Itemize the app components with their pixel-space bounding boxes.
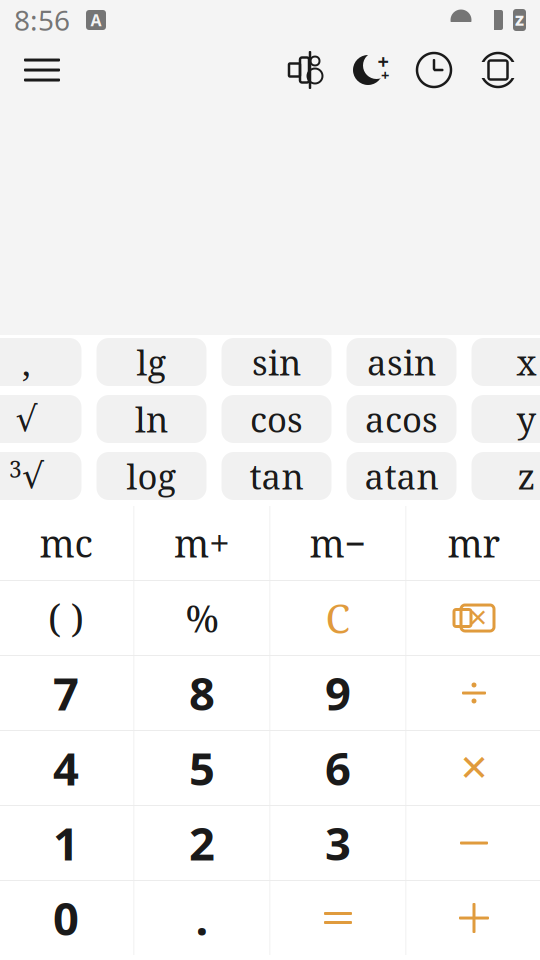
staticText: √ bbox=[15, 399, 37, 439]
staticText: C bbox=[325, 591, 350, 645]
staticText: 5 bbox=[189, 738, 215, 798]
staticText: Z bbox=[515, 10, 524, 30]
button[interactable]: m+ bbox=[134, 506, 269, 580]
staticText: ✕ bbox=[459, 748, 489, 788]
button[interactable]: 3 bbox=[270, 806, 405, 880]
staticText: acos bbox=[365, 395, 438, 443]
staticText: cos bbox=[250, 395, 303, 443]
staticText: 0 bbox=[53, 888, 79, 948]
staticText: 8 bbox=[189, 663, 215, 723]
button[interactable]: C bbox=[270, 581, 405, 655]
button[interactable]: ✕ bbox=[406, 731, 540, 805]
button[interactable]: cos bbox=[221, 395, 331, 443]
staticText: . bbox=[195, 888, 208, 948]
button[interactable]: 1 bbox=[0, 806, 133, 880]
button[interactable]: 6 bbox=[270, 731, 405, 805]
staticText: mc bbox=[39, 518, 92, 568]
button[interactable] bbox=[270, 881, 405, 955]
staticText: m− bbox=[309, 518, 366, 568]
button[interactable]: z bbox=[471, 452, 540, 500]
staticText: + bbox=[377, 48, 388, 74]
staticText: 8:56 bbox=[14, 1, 70, 39]
button[interactable]: 9 bbox=[270, 656, 405, 730]
button[interactable]: Rotate bbox=[470, 42, 526, 98]
staticText: z bbox=[517, 452, 535, 500]
button[interactable]: y bbox=[471, 395, 540, 443]
staticText: , bbox=[22, 338, 31, 386]
button[interactable]: , bbox=[0, 338, 81, 386]
button[interactable] bbox=[406, 806, 540, 880]
staticText: 9 bbox=[325, 663, 351, 723]
button[interactable]: √ bbox=[0, 395, 81, 443]
staticText: 6 bbox=[325, 738, 351, 798]
button[interactable]: Menu bbox=[14, 42, 70, 98]
staticText: log bbox=[126, 452, 176, 500]
button[interactable]: x bbox=[471, 338, 540, 386]
staticText: √ bbox=[22, 456, 44, 496]
staticText: 2 bbox=[189, 813, 215, 873]
button[interactable]: acos bbox=[346, 395, 456, 443]
button[interactable]: 5 bbox=[134, 731, 269, 805]
button[interactable]: % bbox=[134, 581, 269, 655]
button[interactable]: m− bbox=[270, 506, 405, 580]
staticText: % bbox=[185, 593, 218, 643]
staticText: 3 bbox=[9, 454, 22, 484]
staticText: + bbox=[381, 65, 389, 85]
button[interactable]: lg bbox=[96, 338, 206, 386]
staticText: 3 bbox=[325, 813, 351, 873]
button[interactable]: 7 bbox=[0, 656, 133, 730]
button[interactable]: asin bbox=[346, 338, 456, 386]
button[interactable]: Dark mode bbox=[342, 42, 398, 98]
staticText: x bbox=[516, 338, 536, 386]
staticText: m+ bbox=[174, 518, 230, 568]
button[interactable]: 4 bbox=[0, 731, 133, 805]
staticText: sin bbox=[252, 338, 301, 386]
button[interactable]: atan bbox=[346, 452, 456, 500]
staticText: asin bbox=[367, 338, 436, 386]
staticText: y bbox=[516, 395, 536, 443]
staticText: ln bbox=[135, 395, 168, 443]
staticText: tan bbox=[249, 452, 303, 500]
button[interactable]: 8 bbox=[134, 656, 269, 730]
button[interactable] bbox=[406, 881, 540, 955]
button[interactable]: 2 bbox=[134, 806, 269, 880]
staticText: atan bbox=[364, 452, 438, 500]
button[interactable]: 0 bbox=[0, 881, 133, 955]
staticText: ( ) bbox=[48, 593, 84, 643]
button[interactable]: mc bbox=[0, 506, 133, 580]
staticText: ✕ bbox=[468, 604, 488, 632]
button[interactable]: 3 bbox=[0, 452, 81, 500]
button[interactable]: sin bbox=[221, 338, 331, 386]
staticText: A bbox=[90, 9, 101, 31]
staticText: lg bbox=[136, 338, 166, 386]
button[interactable]: ( ) bbox=[0, 581, 133, 655]
button[interactable]: Mute bbox=[278, 42, 334, 98]
button[interactable]: ln bbox=[96, 395, 206, 443]
staticText: 1 bbox=[53, 813, 79, 873]
staticText: 4 bbox=[53, 738, 79, 798]
button[interactable] bbox=[406, 656, 540, 730]
button[interactable]: tan bbox=[221, 452, 331, 500]
button[interactable]: log bbox=[96, 452, 206, 500]
button[interactable]: . bbox=[134, 881, 269, 955]
button[interactable]: ✕ bbox=[406, 581, 540, 655]
button[interactable]: History bbox=[406, 42, 462, 98]
staticText: mr bbox=[447, 518, 500, 568]
staticText: 7 bbox=[53, 663, 79, 723]
button[interactable]: mr bbox=[406, 506, 540, 580]
